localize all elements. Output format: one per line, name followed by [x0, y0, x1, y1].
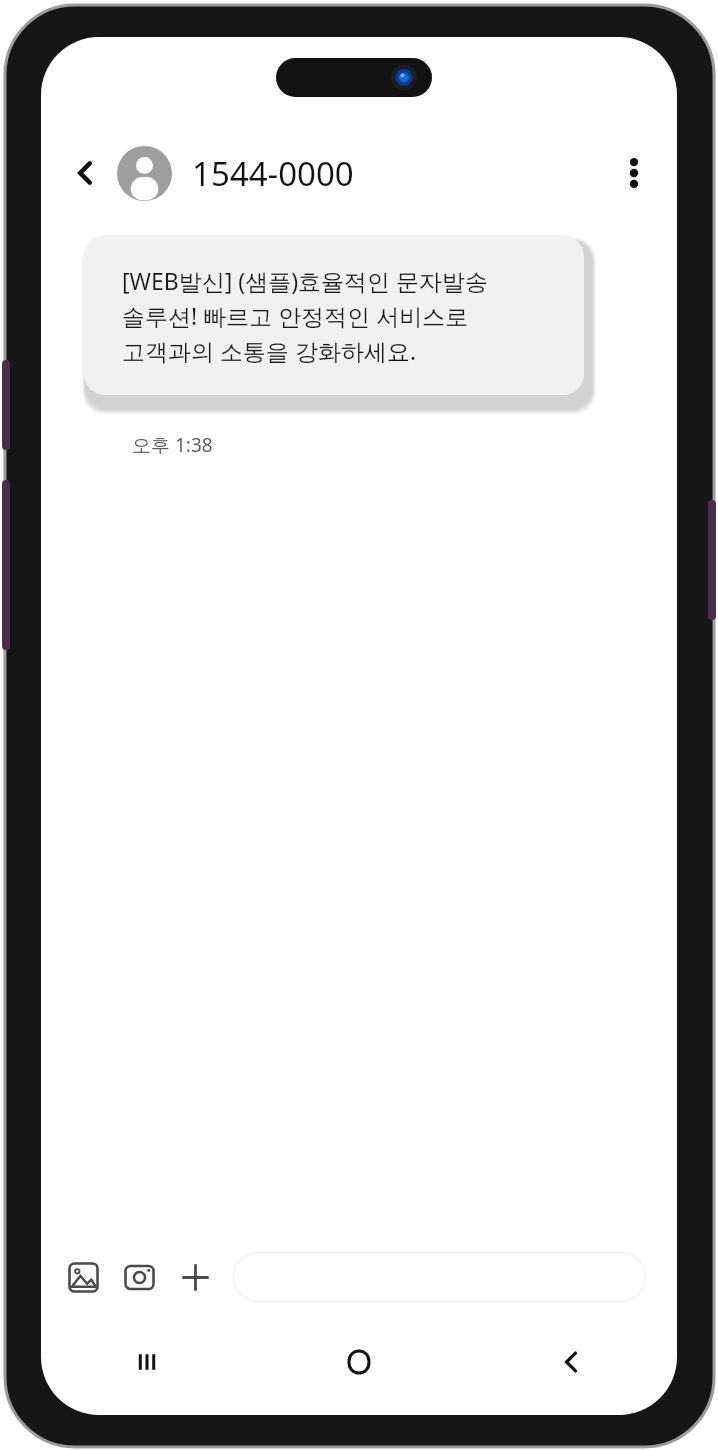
- button[interactable]: Camera: [113, 1251, 165, 1303]
- button[interactable]: [WEB발신] (샘플)효율적인 문자발송: [84, 235, 584, 395]
- button[interactable]: Back: [465, 1323, 677, 1401]
- button[interactable]: Contact avatar: [117, 146, 172, 201]
- staticText: 오후 1:38: [132, 432, 213, 458]
- button[interactable]: Message input: [233, 1252, 646, 1302]
- staticText: 1544-0000: [192, 151, 354, 196]
- button[interactable]: Back: [59, 147, 111, 199]
- staticText: [WEB발신] (샘플)효율적인 문자발송: [122, 265, 489, 296]
- button[interactable]: Attach image: [57, 1251, 109, 1303]
- button[interactable]: More options: [607, 146, 661, 200]
- staticText: 고객과의 소통을 강화하세요.: [122, 335, 417, 366]
- button[interactable]: Home: [253, 1323, 465, 1401]
- button[interactable]: Add attachment: [169, 1251, 221, 1303]
- button[interactable]: Recent apps: [41, 1323, 253, 1401]
- staticText: 솔루션! 빠르고 안정적인 서비스로: [122, 300, 469, 331]
